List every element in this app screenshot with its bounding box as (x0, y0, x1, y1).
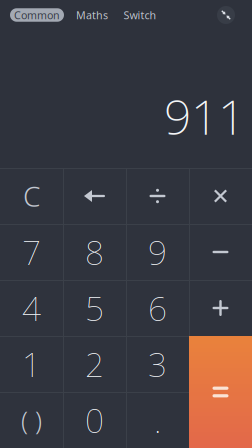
staticText: 0 (85, 398, 104, 442)
button[interactable]: Divide (126, 168, 189, 224)
staticText: 5 (85, 286, 104, 330)
button[interactable]: Common (10, 8, 64, 22)
button[interactable]: Multiply (189, 168, 252, 224)
staticText: Switch (123, 8, 156, 22)
button[interactable]: 3 (126, 336, 189, 392)
button[interactable]: C (0, 168, 63, 224)
staticText: ( ) (21, 403, 42, 437)
staticText: 8 (85, 230, 104, 274)
button[interactable]: 4 (0, 280, 63, 336)
button[interactable]: 9 (126, 224, 189, 280)
button[interactable]: 8 (63, 224, 126, 280)
button[interactable]: Plus (189, 280, 252, 336)
staticText: C (23, 177, 40, 215)
button[interactable]: Maths (69, 6, 115, 23)
button[interactable]: Switch (116, 6, 164, 23)
button[interactable]: ( ) (0, 392, 63, 448)
button[interactable]: Minus (189, 224, 252, 280)
staticText: . (154, 398, 161, 442)
staticText: 4 (22, 286, 41, 330)
staticText: 9 (148, 230, 167, 274)
staticText: Maths (76, 8, 108, 22)
staticText: 2 (85, 342, 104, 386)
button[interactable]: 2 (63, 336, 126, 392)
button[interactable]: 5 (63, 280, 126, 336)
button[interactable]: 0 (63, 392, 126, 448)
button[interactable]: Backspace (63, 168, 126, 224)
button[interactable]: 7 (0, 224, 63, 280)
staticText: Common (14, 8, 60, 22)
staticText: 3 (148, 342, 167, 386)
button[interactable]: Expand (213, 2, 239, 28)
staticText: 6 (148, 286, 167, 330)
button[interactable]: 1 (0, 336, 63, 392)
staticText: 911 (164, 84, 245, 148)
button[interactable]: Equals (189, 336, 252, 448)
button[interactable]: . (126, 392, 189, 448)
staticText: 7 (22, 230, 41, 274)
button[interactable]: 6 (126, 280, 189, 336)
staticText: 1 (22, 342, 41, 386)
